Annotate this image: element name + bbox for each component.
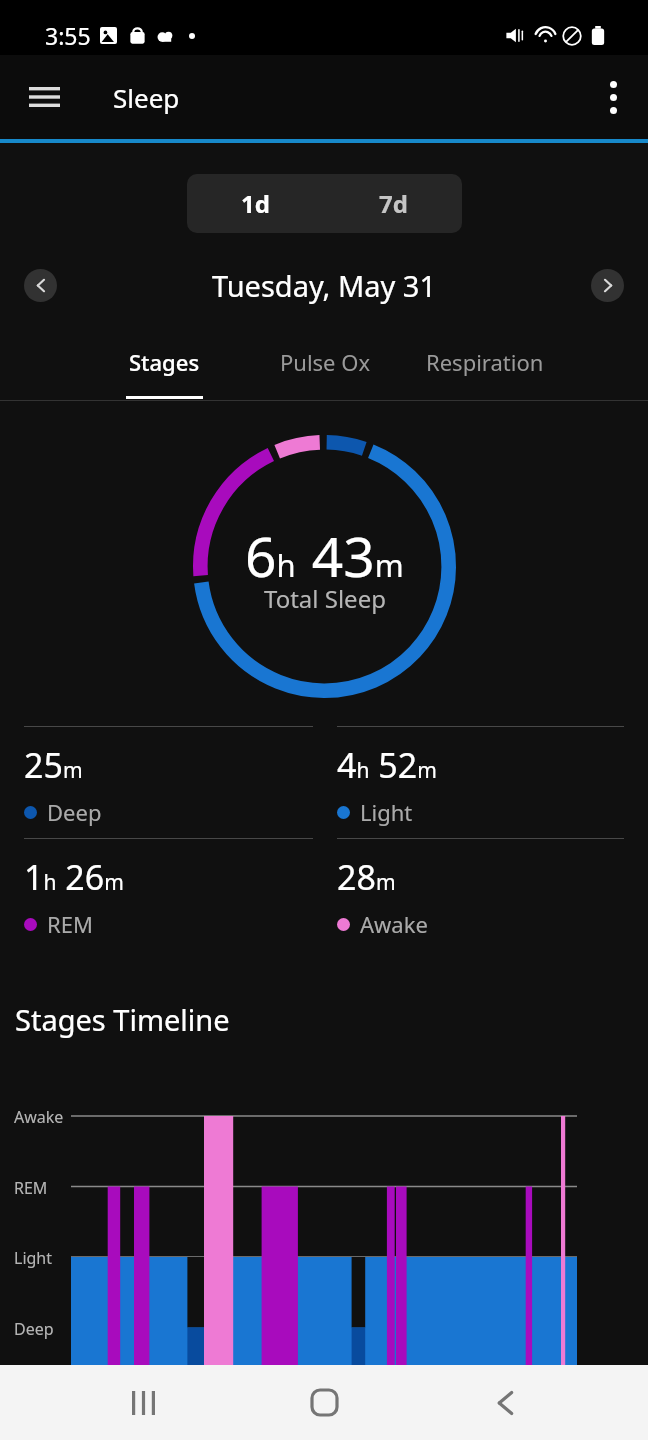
staticText: 3:55 <box>45 20 91 51</box>
staticText: REM <box>47 909 93 939</box>
staticText: Pulse Ox <box>280 347 371 377</box>
staticText: 7d <box>379 187 408 220</box>
staticText: Sleep <box>113 80 180 115</box>
staticText: Stages <box>129 347 200 377</box>
button[interactable]: Pulse Ox <box>259 334 391 401</box>
button[interactable]: Respiration <box>405 334 565 401</box>
staticText: REM <box>14 1177 48 1199</box>
button[interactable]: 7d <box>324 174 462 233</box>
button[interactable]: Stages <box>108 334 221 401</box>
staticText: Awake <box>14 1106 64 1128</box>
button[interactable]: Back <box>445 1365 565 1440</box>
button[interactable]: 1d <box>187 174 324 233</box>
staticText: Awake <box>360 909 428 939</box>
staticText: Light <box>360 797 413 827</box>
button[interactable]: 25m <box>24 726 313 838</box>
staticText: 28m <box>337 854 396 900</box>
button[interactable]: More options <box>585 69 641 125</box>
staticText: 1d <box>241 187 270 220</box>
staticText: 6h 43m <box>245 518 404 593</box>
staticText: Light <box>14 1247 53 1269</box>
staticText: Respiration <box>426 347 544 377</box>
staticText: Deep <box>47 797 102 827</box>
staticText: 1h 26m <box>24 854 124 900</box>
button[interactable]: Recents <box>83 1365 203 1440</box>
button[interactable]: Previous day <box>24 269 57 302</box>
button[interactable]: 1h 26m <box>24 838 313 950</box>
button[interactable]: Home <box>264 1365 384 1440</box>
button[interactable]: 28m <box>337 838 624 950</box>
button[interactable]: Next day <box>591 269 624 302</box>
button[interactable]: Menu <box>14 67 74 127</box>
button[interactable]: 4h 52m <box>337 726 624 838</box>
staticText: Total Sleep <box>264 582 386 615</box>
staticText: 25m <box>24 742 83 788</box>
staticText: Stages Timeline <box>15 1000 230 1039</box>
staticText: Deep <box>14 1318 54 1340</box>
staticText: Tuesday, May 31 <box>212 266 436 305</box>
staticText: 4h 52m <box>337 742 437 788</box>
